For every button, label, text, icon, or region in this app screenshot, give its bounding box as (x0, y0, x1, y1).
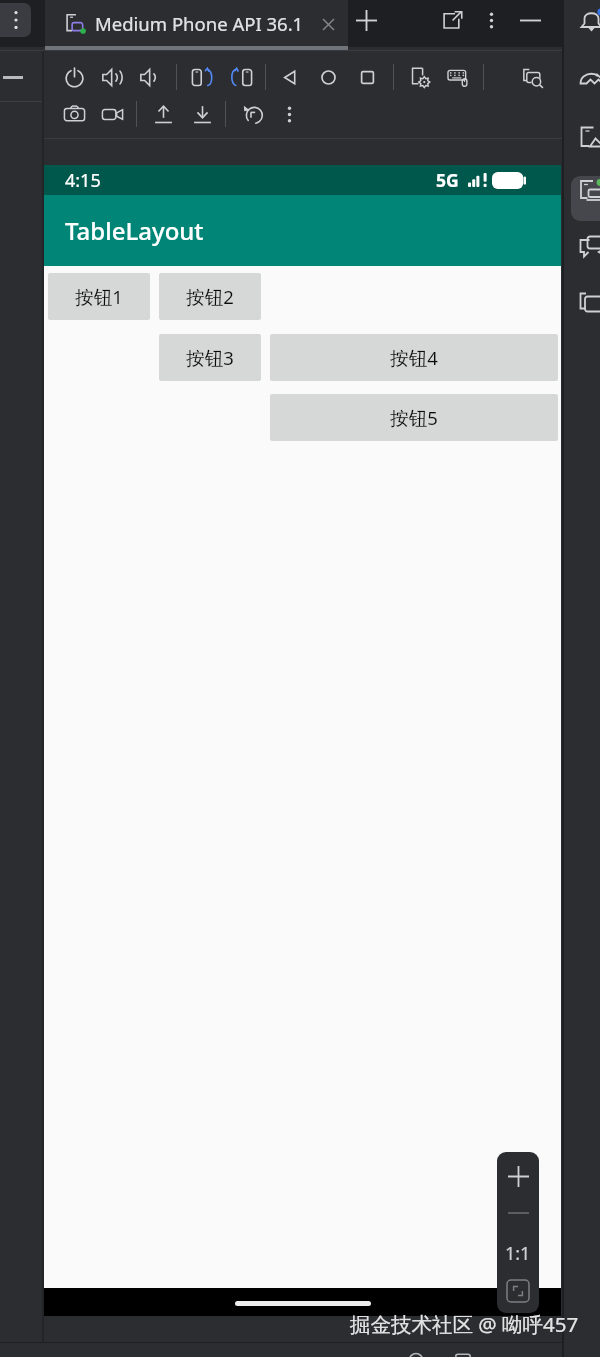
button[interactable]: 按钮4 (270, 334, 558, 381)
button[interactable]: Zoom out (497, 1194, 539, 1232)
staticText: 掘金技术社区 @ 呦呼457 (350, 1310, 579, 1338)
button[interactable]: Keyboard (441, 60, 475, 94)
button[interactable]: 1:1 (497, 1234, 539, 1272)
button[interactable]: New tab (349, 3, 383, 37)
button[interactable]: More (474, 3, 508, 37)
button[interactable]: Terminal (450, 1347, 476, 1357)
button[interactable]: Screenshot (57, 97, 91, 131)
button[interactable]: Record screen (95, 97, 129, 131)
button[interactable]: Sidebar tool 1 (578, 65, 600, 91)
button[interactable]: Search (403, 1347, 429, 1357)
button[interactable]: History (236, 97, 270, 131)
staticText: 按钮3 (186, 345, 234, 370)
button[interactable]: Minimize (513, 3, 547, 37)
button[interactable]: Medium Phone API 36.1 (45, 0, 340, 47)
button[interactable]: Volume down (133, 60, 167, 94)
button[interactable]: 按钮2 (159, 273, 261, 320)
button[interactable]: Zoom in (497, 1157, 539, 1195)
button[interactable]: 按钮3 (159, 334, 261, 381)
button[interactable]: Close tab (316, 12, 340, 36)
staticText: 1:1 (505, 1241, 531, 1266)
button[interactable]: Sidebar tool 4 (578, 233, 600, 259)
button[interactable]: Home gesture (235, 1301, 371, 1306)
staticText: 按钮4 (390, 345, 438, 370)
button[interactable]: More options (0, 3, 31, 37)
button[interactable]: Back (273, 60, 307, 94)
button[interactable]: Fit to screen (497, 1272, 539, 1310)
button[interactable]: Open in window (435, 3, 469, 37)
button[interactable]: Device settings (403, 60, 437, 94)
button[interactable]: Overview (350, 60, 384, 94)
button[interactable]: More (272, 97, 306, 131)
button[interactable]: Sidebar tool 3 (578, 177, 600, 203)
button[interactable]: Download (185, 97, 219, 131)
button[interactable]: 按钮1 (48, 273, 150, 320)
button[interactable]: Sidebar tool 0 (578, 8, 600, 34)
staticText: 按钮2 (186, 284, 234, 309)
button[interactable]: 按钮5 (270, 394, 558, 441)
staticText: TableLayout (65, 214, 204, 247)
button[interactable]: Upload (146, 97, 180, 131)
staticText: Medium Phone API 36.1 (95, 11, 304, 36)
button[interactable]: Power (57, 60, 91, 94)
staticText: 按钮1 (75, 284, 123, 309)
staticText: 按钮5 (390, 405, 438, 430)
button[interactable]: Inspect (516, 60, 550, 94)
button[interactable]: Sidebar tool 2 (578, 124, 600, 150)
staticText: 4:15 (65, 168, 101, 193)
button[interactable]: Rotate left (185, 60, 219, 94)
button[interactable]: Sidebar tool 5 (578, 290, 600, 316)
staticText: 5G (436, 168, 459, 192)
button[interactable]: Volume up (95, 60, 129, 94)
button[interactable]: Home (311, 60, 345, 94)
button[interactable]: Rotate right (224, 60, 258, 94)
